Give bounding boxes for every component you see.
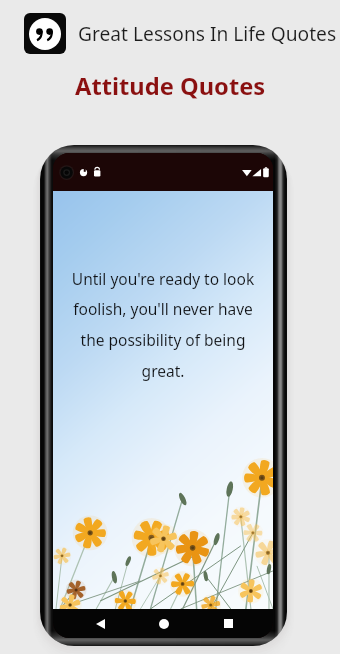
staticText: Great Lessons In Life Quotes	[78, 20, 337, 46]
staticText: Until you're ready to look foolish, you'…	[58, 268, 268, 382]
button[interactable]: Back	[86, 609, 115, 638]
button[interactable]: Until you're ready to look foolish, you'…	[53, 191, 273, 609]
button[interactable]: Recent apps	[214, 609, 243, 638]
button[interactable]: Home	[149, 609, 178, 638]
button[interactable]: Great Lessons In Life Quotes app icon	[24, 13, 66, 54]
staticText: Attitude Quotes	[75, 70, 266, 102]
